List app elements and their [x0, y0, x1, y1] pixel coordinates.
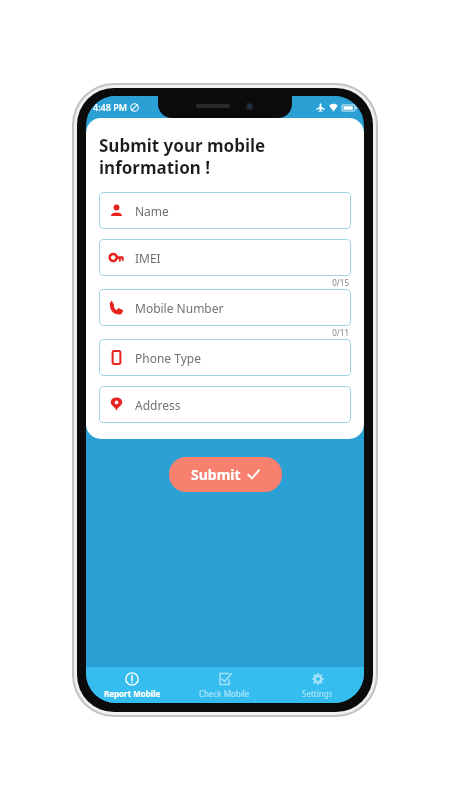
staticText: Address	[135, 397, 181, 413]
button[interactable]: IMEI	[99, 239, 351, 276]
staticText: Name	[135, 203, 169, 219]
button[interactable]: Report Mobile	[86, 667, 178, 703]
button[interactable]: Name	[99, 192, 351, 229]
staticText: Mobile Number	[135, 300, 224, 316]
staticText: Report Mobile	[104, 688, 161, 699]
staticText: 0/11	[332, 327, 349, 338]
button[interactable]: Submit	[169, 457, 282, 492]
staticText: Settings	[302, 688, 333, 699]
button[interactable]: Settings	[271, 667, 364, 703]
staticText: 4:48 PM	[93, 101, 127, 113]
staticText: IMEI	[135, 250, 161, 266]
staticText: 0/15	[332, 277, 349, 288]
staticText: Check Mobile	[199, 688, 250, 699]
button[interactable]: Phone Type	[99, 339, 351, 376]
staticText: Submit your mobile information !	[99, 134, 266, 179]
staticText: Phone Type	[135, 350, 201, 366]
button[interactable]: Mobile Number	[99, 289, 351, 326]
button[interactable]: Check Mobile	[178, 667, 271, 703]
staticText: Submit	[191, 465, 241, 484]
button[interactable]: Address	[99, 386, 351, 423]
